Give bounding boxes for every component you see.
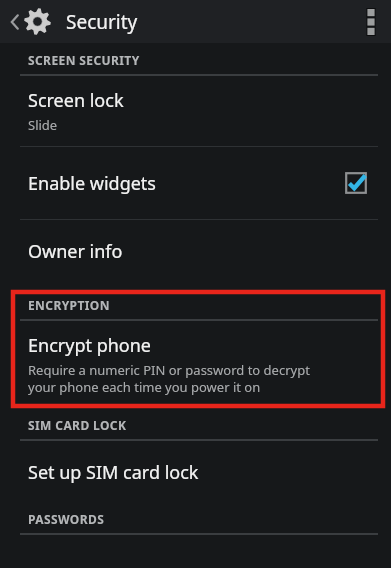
button[interactable]: Encrypt phone (0, 321, 391, 408)
staticText: ENCRYPTION (28, 297, 110, 313)
button[interactable]: Screen lock (0, 76, 391, 146)
button[interactable]: More options (351, 0, 391, 43)
button[interactable]: Enable widgets (0, 147, 391, 219)
staticText: Slide (28, 116, 58, 134)
button[interactable]: Owner info (0, 220, 391, 282)
staticText: Set up SIM card lock (28, 460, 199, 485)
staticText: Encrypt phone (28, 333, 151, 358)
staticText: Enable widgets (28, 171, 156, 196)
staticText: Screen lock (28, 88, 124, 113)
staticText: Security (66, 9, 138, 35)
staticText: Owner info (28, 239, 123, 264)
staticText: Require a numeric PIN or password to dec… (28, 361, 310, 396)
staticText: SCREEN SECURITY (28, 52, 140, 68)
staticText: SIM CARD LOCK (28, 417, 127, 433)
staticText: PASSWORDS (28, 511, 105, 527)
button[interactable]: Navigate up (4, 0, 58, 43)
button[interactable]: Set up SIM card lock (0, 441, 391, 503)
